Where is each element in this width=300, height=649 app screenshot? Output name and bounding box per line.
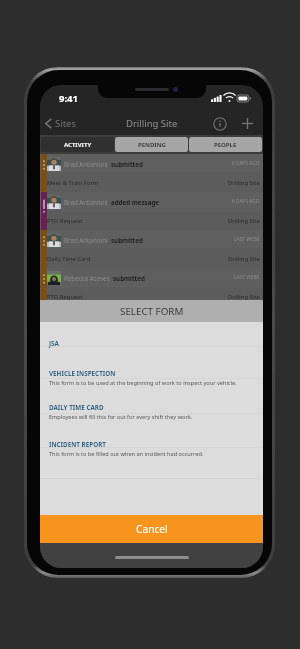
button[interactable]: PENDING: [115, 137, 188, 152]
button[interactable]: VEHICLE INSPECTION: [40, 369, 263, 387]
staticText: submitted: [111, 160, 143, 168]
staticText: submitted: [113, 274, 145, 282]
staticText: Rebecca Aceves: [64, 274, 110, 282]
staticText: DAILY TIME CARD: [49, 403, 104, 412]
button[interactable]: Rebecca Aceves: [40, 268, 263, 306]
button[interactable]: Rebecca Aceves: [40, 306, 263, 344]
staticText: Drilling Site: [126, 117, 178, 130]
staticText: Brad Antonioni: [64, 198, 108, 206]
staticText: added message: [111, 198, 159, 206]
staticText: JSA: [49, 339, 59, 348]
staticText: ACTIVITY: [64, 141, 92, 149]
button[interactable]: ACTIVITY: [41, 137, 114, 152]
staticText: LAST WEEK: [234, 236, 260, 243]
staticText: Daily Time Card: [47, 255, 91, 263]
staticText: submitted: [113, 312, 145, 320]
button[interactable]: INCIDENT REPORT: [40, 440, 263, 458]
button[interactable]: Add: [239, 115, 256, 132]
staticText: PTO Request: [47, 217, 83, 225]
staticText: 6 DAYS AGO: [232, 198, 260, 205]
staticText: SELECT FORM: [120, 305, 184, 318]
staticText: Brad Antonioni: [64, 236, 108, 244]
button[interactable]: Info: [211, 115, 228, 132]
button[interactable]: DAILY TIME CARD: [40, 403, 263, 421]
staticText: Drilling Site: [228, 293, 260, 301]
staticText: Drilling Site: [228, 217, 260, 225]
staticText: PEOPLE: [214, 141, 237, 149]
staticText: PTO Request: [47, 293, 83, 301]
staticText: Employees will fill this for out for eve…: [49, 413, 193, 421]
staticText: 6 DAYS AGO: [232, 160, 260, 167]
staticText: This form is to be filled out when an in…: [49, 450, 204, 458]
button[interactable]: Brad Antonioni: [40, 154, 263, 192]
button[interactable]: JSA: [40, 339, 263, 348]
staticText: LAST WEEK: [234, 274, 260, 281]
button[interactable]: PEOPLE: [189, 137, 262, 152]
button[interactable]: Brad Antonioni: [40, 230, 263, 268]
staticText: Drilling Site: [228, 179, 260, 187]
staticText: Drilling Site: [228, 255, 260, 263]
button[interactable]: Cancel: [40, 515, 263, 543]
staticText: Cancel: [136, 522, 168, 536]
staticText: submitted: [111, 236, 143, 244]
staticText: Meet & Train Form: [47, 179, 99, 187]
staticText: 9:41: [59, 92, 78, 105]
staticText: Brad Antonioni: [64, 160, 108, 168]
staticText: VEHICLE INSPECTION: [49, 369, 116, 378]
button[interactable]: Sites: [40, 113, 83, 134]
staticText: Sites: [55, 117, 77, 130]
staticText: This form is to be used at the beginning…: [49, 379, 237, 387]
staticText: PENDING: [138, 141, 166, 149]
button[interactable]: Brad Antonioni: [40, 192, 263, 230]
staticText: INCIDENT REPORT: [49, 440, 106, 449]
